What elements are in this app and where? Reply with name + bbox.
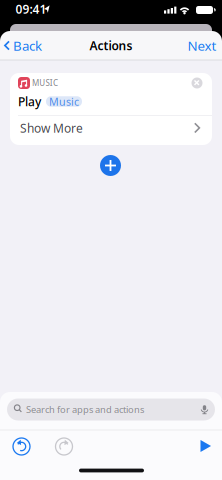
staticText: Next <box>187 37 216 54</box>
button[interactable]: Back <box>4 37 42 54</box>
button[interactable]: Search for apps and actions <box>7 398 215 420</box>
button[interactable]: Next <box>185 35 219 55</box>
staticText: Search for apps and actions <box>26 403 144 416</box>
button[interactable]: Music <box>46 96 82 107</box>
staticText: Show More <box>20 120 83 136</box>
staticText: Play <box>18 93 41 109</box>
button[interactable]: Redo <box>52 434 76 458</box>
button[interactable]: Run shortcut <box>194 434 218 458</box>
staticText: Actions <box>89 37 132 53</box>
staticText: Back <box>13 37 42 54</box>
button[interactable]: Undo <box>9 434 33 458</box>
button[interactable]: Add action <box>100 155 121 176</box>
button[interactable]: Remove action <box>191 77 202 88</box>
staticText: MUSIC <box>32 78 58 88</box>
staticText: Music <box>49 94 79 109</box>
button[interactable]: Show More <box>10 115 212 141</box>
staticText: 09:41 <box>15 1 46 17</box>
